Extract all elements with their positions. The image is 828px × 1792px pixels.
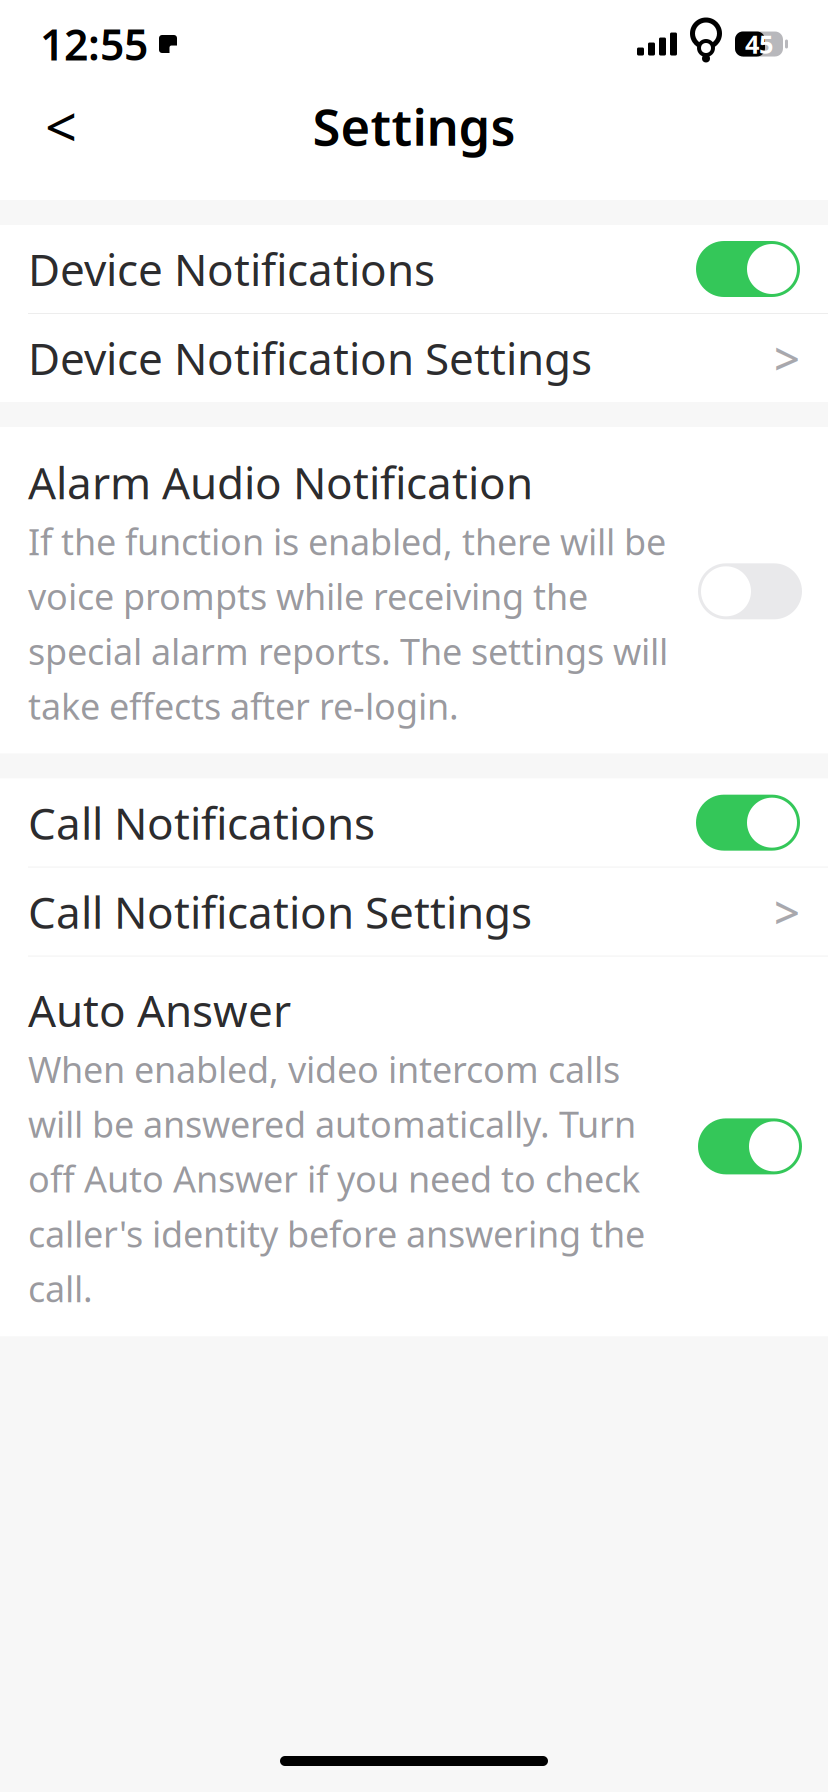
button[interactable]: Alarm Audio Notification — [0, 427, 828, 754]
staticText: Auto Answer — [28, 981, 291, 1039]
staticText: Device Notifications — [28, 240, 435, 298]
button[interactable]: Call Notification Settings — [0, 868, 828, 956]
staticText: When enabled, video intercom calls will … — [28, 1045, 645, 1312]
button[interactable]: Device Notification Settings — [0, 314, 828, 402]
button[interactable]: Auto Answer — [0, 957, 828, 1336]
staticText: Call Notifications — [28, 793, 375, 852]
staticText: Device Notification Settings — [28, 329, 592, 387]
staticText: < — [45, 89, 77, 163]
button[interactable]: Back — [26, 91, 96, 161]
button[interactable]: Call Notifications — [0, 779, 828, 867]
button[interactable]: Device Notifications — [0, 225, 828, 313]
staticText: 12:55 — [40, 16, 148, 72]
staticText: Call Notification Settings — [28, 882, 532, 941]
staticText: > — [774, 882, 800, 942]
staticText: > — [774, 328, 800, 388]
staticText: 45 — [745, 27, 773, 61]
staticText: Settings — [312, 92, 515, 160]
staticText: Alarm Audio Notification — [28, 453, 533, 511]
staticText: If the function is enabled, there will b… — [28, 517, 668, 730]
